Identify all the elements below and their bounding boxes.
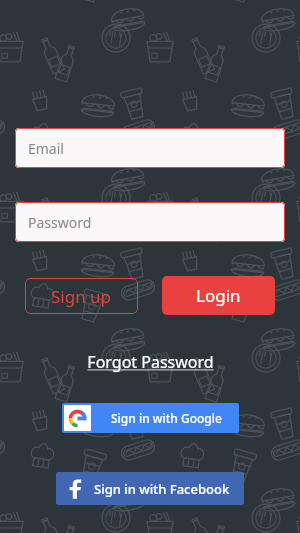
- staticText: Login: [196, 284, 241, 307]
- staticText: Password: [28, 213, 92, 232]
- button[interactable]: Sign in with Google: [62, 403, 239, 433]
- staticText: Sign in with Google: [111, 410, 222, 426]
- button[interactable]: Forgot Password: [81, 349, 220, 375]
- staticText: Sign up: [51, 285, 112, 308]
- staticText: Forgot Password: [87, 351, 214, 373]
- staticText: Sign in with Facebook: [94, 480, 230, 498]
- staticText: Email: [28, 139, 64, 158]
- button[interactable]: Sign up: [25, 278, 138, 314]
- button[interactable]: Login: [162, 276, 275, 315]
- button[interactable]: Sign in with Facebook: [56, 472, 244, 505]
- button[interactable]: Email: [15, 128, 285, 168]
- button[interactable]: Password: [15, 202, 285, 242]
